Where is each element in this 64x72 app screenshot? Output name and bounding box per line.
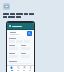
button[interactable]: Saved bbox=[21, 65, 27, 72]
button[interactable]: Profile bbox=[27, 65, 33, 72]
button[interactable]: App icon bbox=[3, 3, 10, 10]
button[interactable]: Home bbox=[8, 65, 15, 72]
button[interactable]: App bar bbox=[7, 23, 34, 29]
button[interactable]: Search field bbox=[9, 31, 26, 36]
button[interactable]: Browse bbox=[15, 65, 21, 72]
button[interactable]: Search bbox=[27, 31, 32, 36]
